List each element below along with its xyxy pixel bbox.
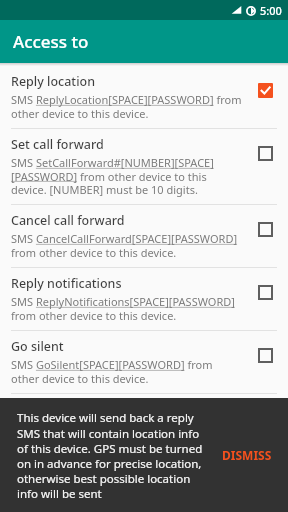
button[interactable]: Reply location bbox=[248, 73, 282, 107]
button[interactable]: Set call forward bbox=[248, 136, 282, 170]
staticText: SMS SetCallForward#[NUMBER][SPACE][PASSW… bbox=[11, 155, 242, 197]
staticText: Go vibrate bbox=[11, 401, 73, 418]
button[interactable]: Go silent bbox=[248, 338, 282, 372]
staticText: SMS ReplyNotifications[SPACE][PASSWORD] … bbox=[11, 294, 242, 323]
staticText: SMS GoSilent[SPACE][PASSWORD] from other… bbox=[11, 357, 242, 386]
button[interactable]: Set call forward bbox=[0, 129, 288, 204]
button[interactable]: Cancel call forward bbox=[248, 212, 282, 246]
staticText: Access to bbox=[13, 30, 89, 53]
staticText: Reply notifications bbox=[11, 275, 122, 292]
button[interactable]: Reply notifications bbox=[0, 268, 288, 330]
staticText: SMS CancelCallForward[SPACE][PASSWORD] f… bbox=[11, 231, 242, 260]
staticText: SMS GoVibrate[SPACE][PASSWORD] from othe… bbox=[11, 420, 242, 449]
staticText: Set call forward bbox=[11, 136, 104, 153]
staticText: This device will send back a reply SMS t… bbox=[17, 410, 206, 501]
button[interactable]: Reply location bbox=[0, 66, 288, 128]
button[interactable]: Cancel call forward bbox=[0, 205, 288, 267]
button[interactable]: DISMISS bbox=[216, 439, 278, 471]
staticText: Cancel call forward bbox=[11, 212, 125, 229]
staticText: SMS ReplyLocation[SPACE][PASSWORD] from … bbox=[11, 92, 242, 121]
button[interactable]: Go silent bbox=[0, 331, 288, 393]
staticText: 5:00 bbox=[260, 3, 282, 18]
staticText: Go silent bbox=[11, 338, 64, 355]
button[interactable]: Go vibrate bbox=[0, 394, 288, 456]
staticText: Reply location bbox=[11, 73, 95, 90]
button[interactable]: Reply notifications bbox=[248, 275, 282, 309]
staticText: DISMISS bbox=[222, 447, 272, 463]
